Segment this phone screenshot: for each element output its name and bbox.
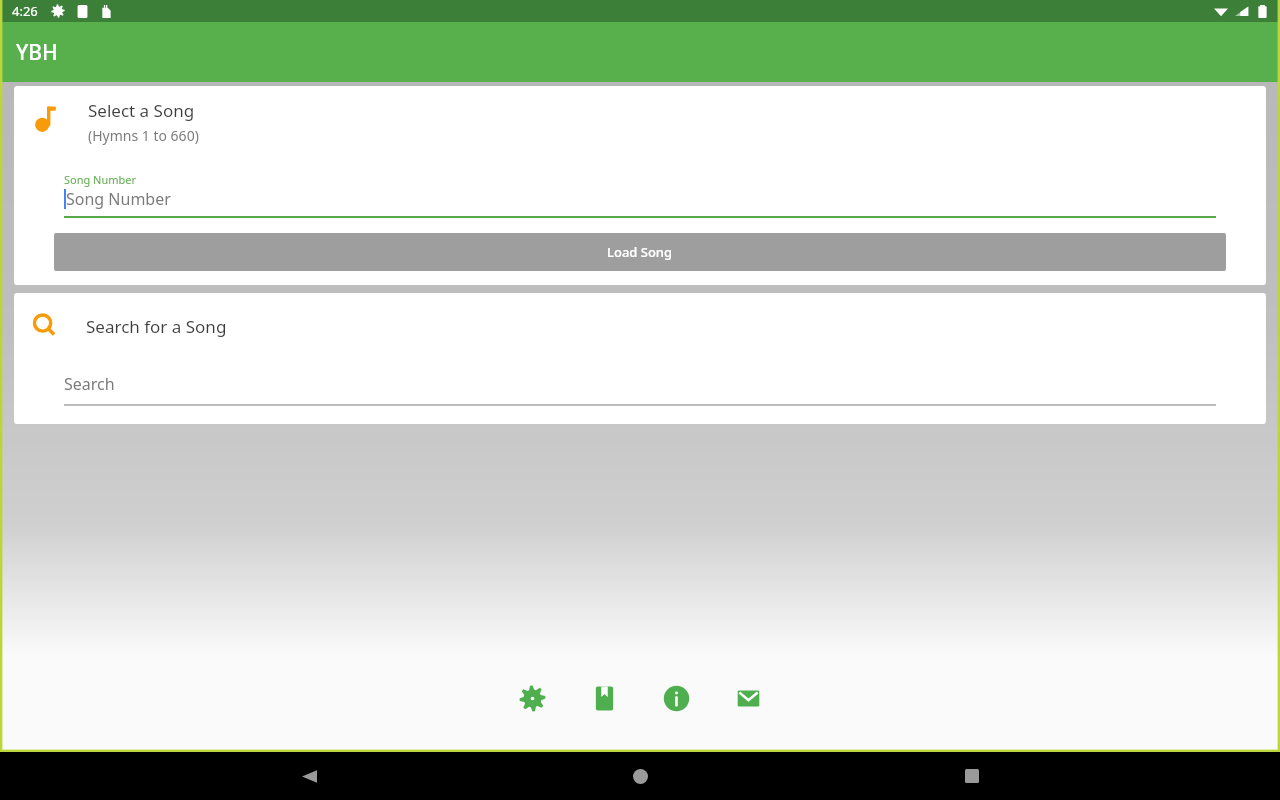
staticText: YBH xyxy=(16,38,58,67)
staticText: Song Number xyxy=(64,172,137,187)
button[interactable]: Settings xyxy=(510,676,554,720)
staticText: 4:26 xyxy=(12,2,38,20)
staticText: (Hymns 1 to 660) xyxy=(88,126,199,145)
staticText: Song Number xyxy=(66,188,171,210)
button[interactable]: Hymn book xyxy=(582,676,626,720)
staticText: Select a Song xyxy=(88,99,195,122)
staticText: Load Song xyxy=(607,243,673,261)
staticText: Search for a Song xyxy=(86,315,227,338)
staticText: Search xyxy=(64,373,115,395)
button[interactable]: Back xyxy=(286,753,332,799)
button[interactable]: Contact us xyxy=(726,676,770,720)
button[interactable]: Load Song xyxy=(54,233,1226,271)
button[interactable]: Home xyxy=(617,753,663,799)
button[interactable]: About xyxy=(654,676,698,720)
button[interactable]: Recent apps xyxy=(949,753,995,799)
